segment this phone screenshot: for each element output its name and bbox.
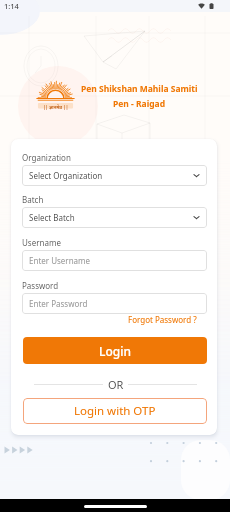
button[interactable]: Select Batch	[22, 207, 207, 228]
staticText: Select Batch	[29, 212, 75, 223]
staticText: Username	[22, 237, 61, 248]
button[interactable]: Enter Password	[22, 293, 207, 314]
staticText: Batch	[22, 194, 44, 205]
staticText: || ज्ञानमेव ||	[43, 104, 69, 110]
other: Expand	[192, 213, 201, 222]
button[interactable]: Login with OTP	[23, 398, 207, 424]
staticText: Enter Password	[29, 298, 88, 309]
button[interactable]: Forgot Password ?	[128, 314, 217, 325]
staticText: Organization	[22, 152, 71, 163]
staticText: 1:14	[4, 1, 19, 11]
staticText: OR	[108, 377, 124, 391]
staticText: Enter Username	[29, 255, 91, 266]
staticText: Login with OTP	[74, 403, 156, 419]
staticText: Pen - Raigad	[113, 98, 166, 110]
staticText: Pen Shikshan Mahila Samiti	[81, 83, 198, 95]
staticText: Login	[99, 343, 131, 359]
staticText: Password	[22, 280, 59, 291]
button[interactable]: Enter Username	[22, 250, 207, 271]
button[interactable]: Login	[23, 337, 207, 364]
staticText: Select Organization	[29, 170, 103, 181]
button[interactable]: Select Organization	[22, 165, 207, 186]
other: Expand	[192, 171, 201, 180]
